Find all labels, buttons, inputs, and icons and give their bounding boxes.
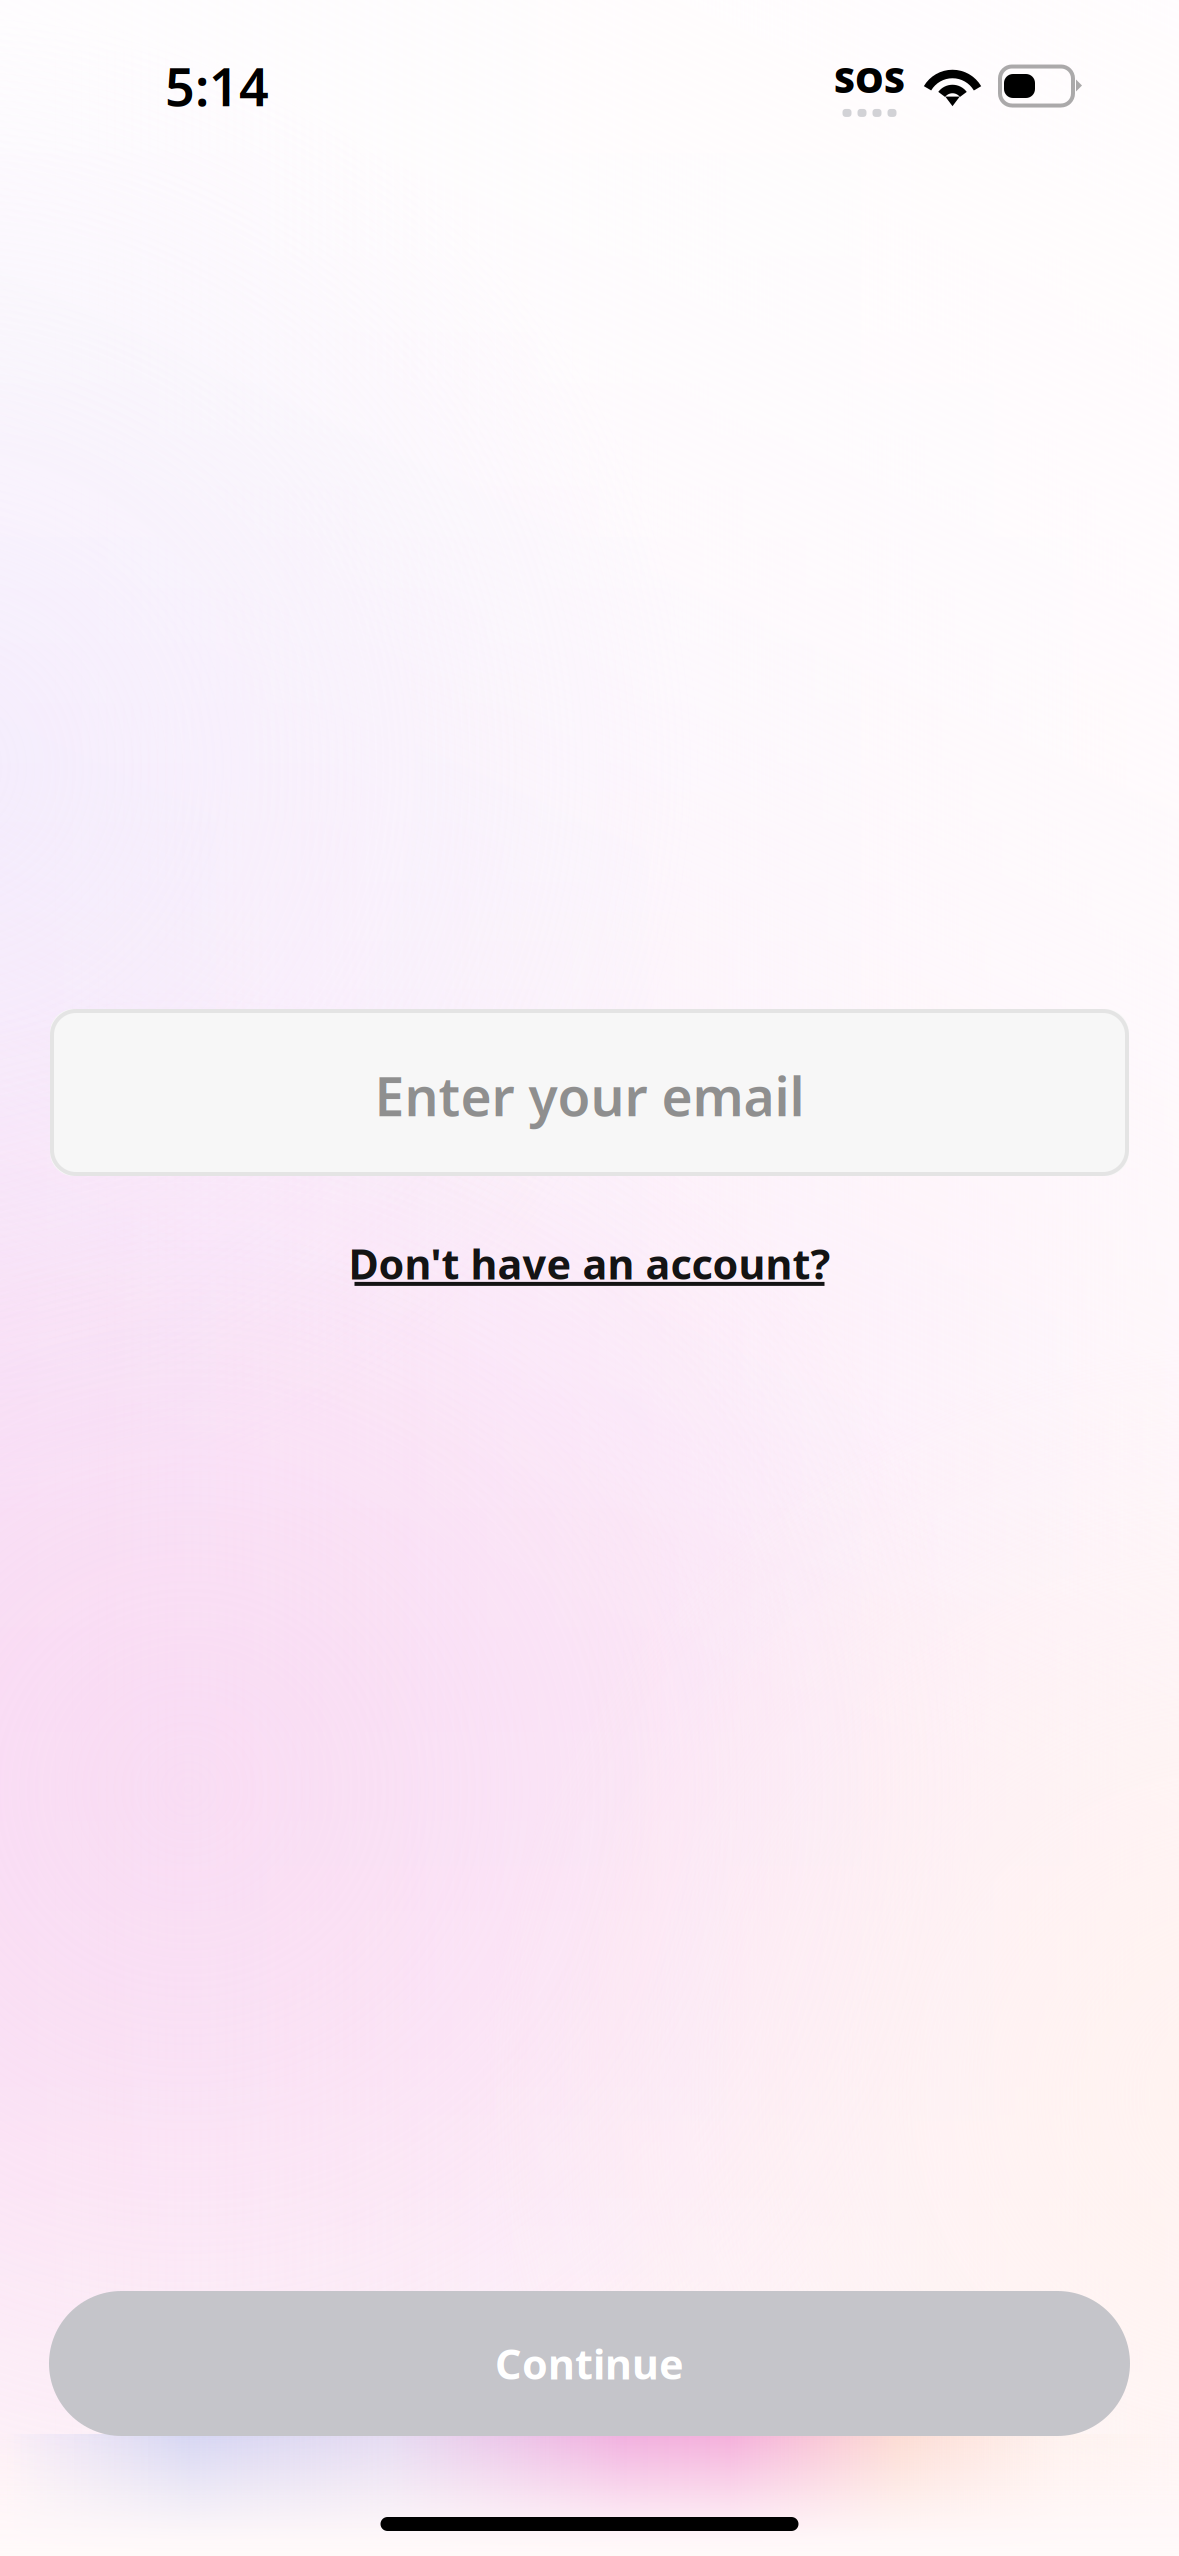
staticText: Don't have an account? [348,1236,830,1291]
button[interactable]: Continue [49,2291,1130,2436]
staticText: Enter your email [374,1060,804,1131]
staticText: SOS [834,55,905,103]
staticText: 5:14 [165,51,269,121]
button[interactable]: Don't have an account? [318,1216,860,1306]
staticText: Continue [495,2336,684,2391]
button[interactable]: Enter your email [50,1009,1129,1176]
